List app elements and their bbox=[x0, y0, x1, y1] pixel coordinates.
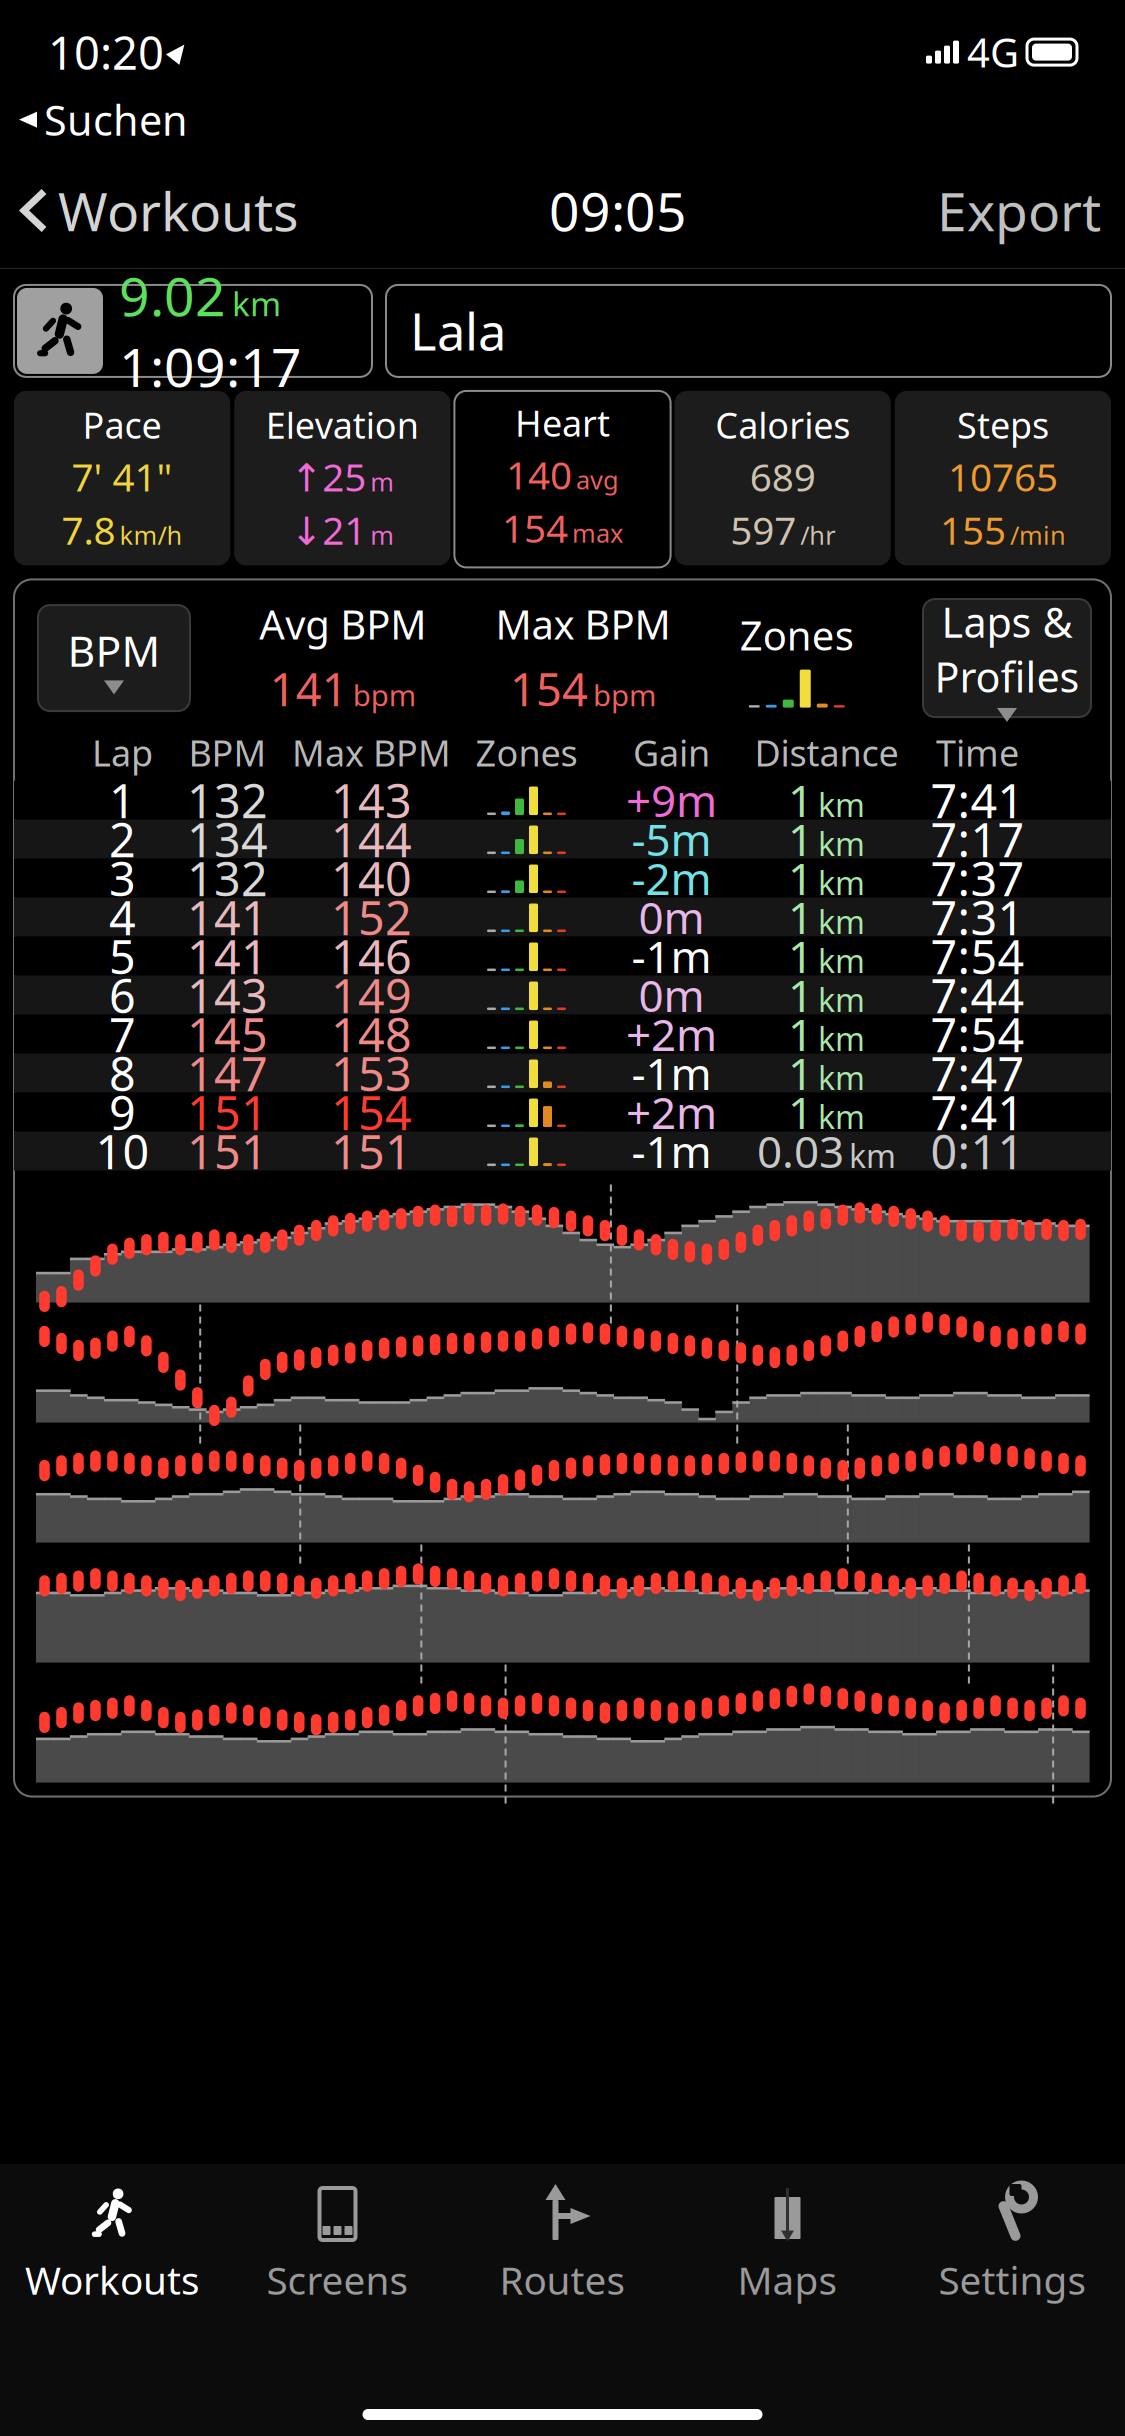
staticText: 151 bbox=[331, 1120, 412, 1182]
button[interactable]: 8 bbox=[14, 1053, 1111, 1092]
button[interactable]: Export bbox=[937, 175, 1101, 246]
button[interactable]: 9.02 bbox=[14, 285, 372, 377]
staticText: 1 bbox=[788, 888, 813, 946]
staticText: Pace bbox=[83, 401, 162, 449]
staticText: 147 bbox=[187, 1042, 268, 1104]
staticText: 7' 41" bbox=[72, 451, 173, 502]
staticText: -5m bbox=[631, 810, 711, 868]
staticText: 6 bbox=[109, 964, 136, 1026]
staticText: km bbox=[818, 939, 865, 982]
staticText: Lap bbox=[92, 729, 153, 776]
staticText: 149 bbox=[331, 964, 412, 1026]
staticText: km bbox=[849, 1134, 896, 1177]
staticText: 5 bbox=[109, 925, 136, 987]
button[interactable]: 5 bbox=[14, 936, 1111, 975]
staticText: 1 bbox=[109, 769, 136, 831]
staticText: 7 bbox=[109, 1003, 136, 1065]
button[interactable]: Workouts bbox=[24, 175, 299, 246]
staticText: Laps & bbox=[941, 594, 1072, 649]
staticText: 154 bbox=[502, 502, 568, 553]
staticText: 10:20 bbox=[48, 22, 164, 82]
button[interactable]: Routes bbox=[450, 2180, 675, 2309]
staticText: bpm bbox=[353, 675, 416, 714]
staticText: 152 bbox=[331, 886, 412, 948]
button[interactable]: Calories bbox=[675, 391, 891, 565]
staticText: 689 bbox=[750, 451, 816, 502]
staticText: +2m bbox=[626, 1005, 717, 1063]
button[interactable]: 6 bbox=[14, 975, 1111, 1014]
staticText: Avg BPM bbox=[259, 597, 426, 650]
staticText: Workouts bbox=[58, 175, 299, 246]
staticText: 143 bbox=[187, 964, 268, 1026]
staticText: 0m bbox=[638, 966, 704, 1024]
staticText: Heart bbox=[515, 399, 610, 447]
button[interactable]: Pace bbox=[14, 391, 230, 565]
staticText: 09:05 bbox=[549, 175, 687, 246]
staticText: 7:17 bbox=[930, 808, 1024, 870]
staticText: avg bbox=[576, 463, 619, 496]
staticText: 151 bbox=[187, 1120, 268, 1182]
staticText: 8 bbox=[109, 1042, 136, 1104]
staticText: Gain bbox=[633, 729, 710, 776]
staticText: 3 bbox=[109, 847, 136, 909]
button[interactable]: Maps bbox=[675, 2180, 900, 2309]
staticText: ↓21 bbox=[290, 504, 366, 555]
staticText: 0:11 bbox=[930, 1120, 1024, 1182]
button[interactable]: Lala bbox=[386, 285, 1111, 377]
staticText: 146 bbox=[331, 925, 412, 987]
button[interactable]: 2 bbox=[14, 819, 1111, 858]
staticText: km bbox=[818, 822, 865, 865]
button[interactable]: Laps & bbox=[923, 599, 1091, 717]
button[interactable]: 1 bbox=[14, 780, 1111, 819]
button[interactable]: Workouts bbox=[0, 2180, 225, 2309]
staticText: Suchen bbox=[44, 92, 188, 147]
staticText: m bbox=[370, 518, 394, 552]
staticText: 154 bbox=[510, 658, 588, 719]
button[interactable]: Settings bbox=[900, 2180, 1125, 2309]
staticText: Zones bbox=[740, 608, 854, 662]
staticText: -1m bbox=[631, 927, 711, 985]
button[interactable]: 10 bbox=[14, 1131, 1111, 1170]
staticText: Max BPM bbox=[292, 729, 451, 776]
button[interactable]: Screens bbox=[225, 2180, 450, 2309]
staticText: /hr bbox=[800, 518, 835, 552]
staticText: km bbox=[818, 1056, 865, 1099]
staticText: Steps bbox=[957, 401, 1049, 449]
staticText: 1 bbox=[788, 1083, 813, 1141]
staticText: km bbox=[818, 783, 865, 826]
staticText: Zones bbox=[475, 729, 577, 776]
button[interactable]: 9 bbox=[14, 1092, 1111, 1131]
button[interactable]: Steps bbox=[895, 391, 1111, 565]
staticText: bpm bbox=[593, 675, 656, 714]
staticText: 132 bbox=[187, 769, 268, 831]
button[interactable]: Heart bbox=[454, 391, 671, 567]
staticText: max bbox=[572, 516, 623, 550]
staticText: Max BPM bbox=[495, 597, 670, 650]
staticText: 7:44 bbox=[930, 964, 1024, 1026]
staticText: 1 bbox=[788, 1044, 813, 1102]
staticText: 140 bbox=[506, 449, 572, 500]
staticText: 1 bbox=[788, 849, 813, 907]
staticText: 148 bbox=[331, 1003, 412, 1065]
staticText: Screens bbox=[266, 2254, 408, 2305]
staticText: 1 bbox=[788, 771, 813, 829]
button[interactable]: BPM bbox=[38, 605, 190, 711]
button[interactable]: Elevation bbox=[234, 391, 450, 565]
staticText: -2m bbox=[631, 849, 711, 907]
staticText: 1 bbox=[788, 927, 813, 985]
staticText: Settings bbox=[938, 2254, 1086, 2305]
staticText: Routes bbox=[499, 2254, 625, 2305]
staticText: 597 bbox=[730, 504, 796, 555]
staticText: -1m bbox=[631, 1044, 711, 1102]
staticText: 7:41 bbox=[930, 1081, 1024, 1143]
button[interactable]: 7 bbox=[14, 1014, 1111, 1053]
staticText: km bbox=[232, 281, 281, 325]
button[interactable]: 4 bbox=[14, 897, 1111, 936]
staticText: Lala bbox=[410, 297, 506, 365]
staticText: ↑25 bbox=[290, 451, 366, 502]
staticText: km/h bbox=[120, 518, 183, 552]
staticText: -1m bbox=[631, 1122, 711, 1180]
staticText: 10 bbox=[95, 1120, 149, 1182]
button[interactable]: 3 bbox=[14, 858, 1111, 897]
staticText: 4G bbox=[967, 25, 1019, 79]
